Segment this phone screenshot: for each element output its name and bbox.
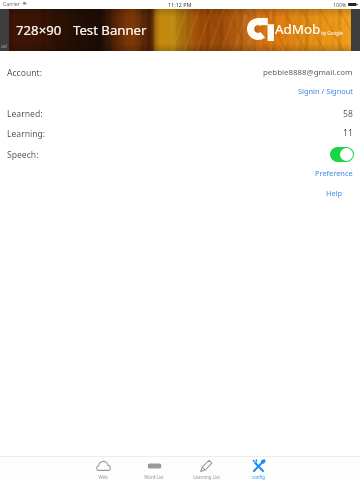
button[interactable]: Web — [81, 459, 125, 480]
staticText: pebble8888@gmail.com — [263, 67, 353, 78]
staticText: Carrier — [3, 0, 20, 7]
staticText: 11 — [343, 127, 353, 139]
button[interactable]: config — [236, 459, 280, 480]
staticText: Web — [98, 474, 108, 480]
button[interactable]: Help — [308, 187, 360, 198]
staticText: 728×90 — [16, 21, 62, 39]
staticText: Learning: — [7, 128, 46, 140]
staticText: AdMob — [275, 20, 321, 38]
button[interactable]: Word List — [132, 459, 176, 480]
button[interactable]: Signin / Signout — [298, 86, 353, 96]
staticText: Account: — [7, 67, 42, 79]
staticText: 11:12 PM — [168, 1, 192, 8]
staticText: 100% — [333, 1, 347, 8]
staticText: Speech: — [7, 149, 39, 161]
button[interactable]: Speech toggle — [330, 147, 354, 162]
staticText: Signin / Signout — [298, 86, 353, 96]
button[interactable]: Learning List — [184, 459, 228, 480]
staticText: Preference — [315, 168, 353, 178]
staticText: Learned: — [7, 108, 43, 120]
staticText: Learning List — [193, 474, 220, 480]
button[interactable]: Preference — [308, 167, 360, 178]
button[interactable]: Advertisement — [0, 9, 360, 51]
staticText: Word List — [144, 474, 164, 480]
staticText: Test Banner — [73, 21, 147, 39]
staticText: config — [252, 474, 265, 480]
staticText: by Google — [321, 30, 343, 36]
staticText: ad — [1, 43, 7, 50]
staticText: 58 — [343, 108, 353, 120]
staticText: Help — [326, 188, 343, 198]
